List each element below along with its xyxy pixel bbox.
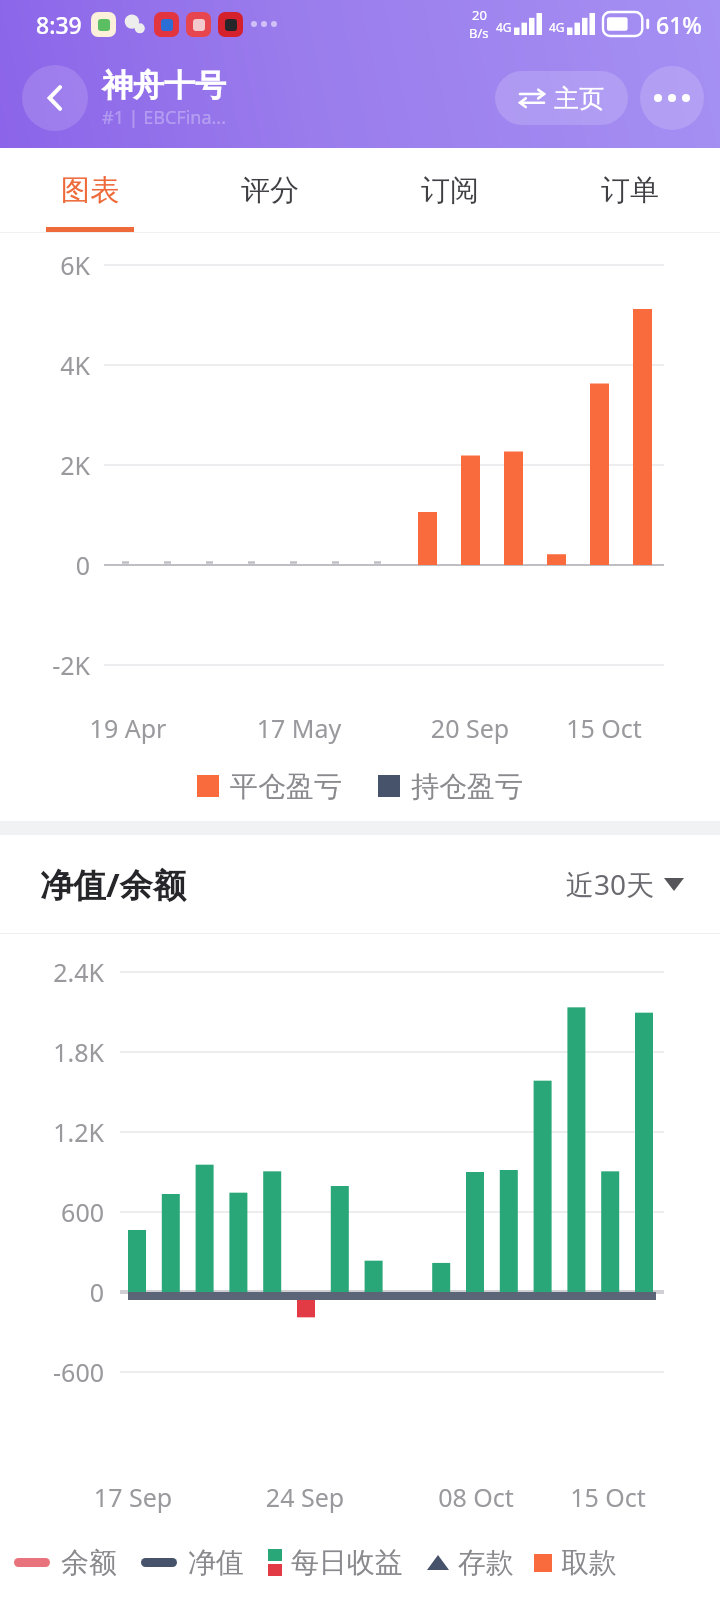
staticText: 1.8K [0,1035,104,1069]
button[interactable]: More options [640,66,704,130]
button[interactable]: 图表 [0,148,180,232]
staticText: #1 | EBCFina... [102,105,226,130]
button[interactable]: Back [22,65,88,131]
staticText: 持仓盈亏 [411,769,523,804]
button[interactable]: 主页 [495,71,628,125]
staticText: 24 Sep [235,1480,375,1514]
button[interactable]: 近30天 [562,857,688,911]
staticText: 2.4K [0,955,104,989]
button[interactable]: 评分 [180,148,360,232]
staticText: 17 Sep [63,1480,203,1514]
staticText: 20 Sep [400,711,540,745]
staticText: 4G [549,19,565,35]
button[interactable]: 订阅 [360,148,540,232]
staticText: 08 Oct [406,1480,546,1514]
staticText: 1.2K [0,1115,104,1149]
staticText: 神舟十号 [102,66,226,105]
staticText: 图表 [61,172,119,209]
button[interactable]: 订单 [540,148,720,232]
staticText: 61% [656,9,702,40]
staticText: 15 Oct [538,1480,678,1514]
staticText: 600 [0,1195,104,1229]
staticText: 0 [0,548,90,582]
button[interactable]: 每日收益 [268,1545,403,1580]
staticText: 净值/余额 [40,862,186,907]
staticText: 余额 [61,1545,117,1580]
staticText: B/s [469,24,489,42]
staticText: 订单 [601,172,659,209]
staticText: 订阅 [421,172,479,209]
staticText: 2K [0,448,90,482]
staticText: 取款 [561,1545,617,1580]
button[interactable]: 取款 [534,1545,617,1580]
staticText: -2K [0,648,90,682]
button[interactable]: 余额 [14,1545,117,1580]
staticText: 8:39 [36,9,82,40]
staticText: 平仓盈亏 [230,769,342,804]
staticText: 15 Oct [534,711,674,745]
staticText: 17 May [229,711,369,745]
staticText: 存款 [458,1545,514,1580]
button[interactable]: 存款 [427,1545,514,1580]
staticText: 评分 [241,172,299,209]
staticText: 6K [0,248,90,282]
staticText: -600 [0,1355,104,1389]
staticText: 0 [0,1275,104,1309]
staticText: 每日收益 [291,1545,403,1580]
button[interactable]: 净值 [141,1545,244,1580]
staticText: 20 [472,6,487,24]
staticText: 19 Apr [58,711,198,745]
staticText: 净值 [188,1545,244,1580]
staticText: 4G [496,19,512,35]
staticText: 4K [0,348,90,382]
staticText: 近30天 [566,865,655,903]
staticText: 主页 [554,83,604,114]
